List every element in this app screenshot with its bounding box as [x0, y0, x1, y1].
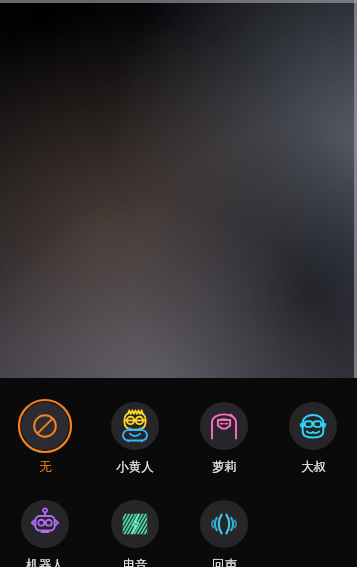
button[interactable]: 大叔 — [276, 399, 350, 475]
staticText: 机器人 — [26, 557, 64, 567]
staticText: 电音 — [123, 557, 148, 567]
staticText: 回声 — [212, 557, 237, 567]
button[interactable]: 电音 — [98, 497, 172, 567]
staticText: 大叔 — [301, 459, 326, 475]
button[interactable]: 无 — [8, 399, 82, 475]
staticText: 无 — [39, 459, 52, 475]
button[interactable]: 萝莉 — [187, 399, 261, 475]
staticText: 萝莉 — [212, 459, 237, 475]
button[interactable]: 回声 — [187, 497, 261, 567]
button[interactable]: 机器人 — [8, 497, 82, 567]
button[interactable]: 小黄人 — [98, 399, 172, 475]
staticText: 小黄人 — [116, 459, 154, 475]
